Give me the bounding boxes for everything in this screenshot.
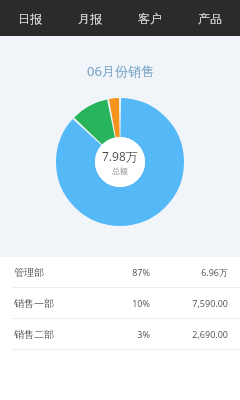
staticText: 10% [110,297,150,309]
staticText: 销售一部 [14,297,110,310]
button[interactable]: 客户 [120,0,180,36]
staticText: 总额 [112,166,128,176]
staticText: 87% [110,266,150,278]
staticText: 销售二部 [14,328,110,341]
staticText: 6.96万 [168,266,228,278]
staticText: 7.98万 [102,148,138,164]
button[interactable]: 管理部 [0,257,240,287]
button[interactable]: 日报 [0,0,60,36]
button[interactable]: 月报 [60,0,120,36]
staticText: 7,590.00 [168,297,228,309]
button[interactable]: 产品 [180,0,240,36]
staticText: 管理部 [14,266,110,279]
staticText: 客户 [138,11,162,26]
button[interactable]: 销售二部 [0,319,240,349]
staticText: 2,690.00 [168,328,228,340]
button[interactable]: 销售一部 [0,288,240,318]
staticText: 06月份销售 [87,62,154,80]
staticText: 月报 [78,11,102,26]
staticText: 产品 [198,11,222,26]
staticText: 日报 [18,11,42,26]
staticText: 3% [110,328,150,340]
